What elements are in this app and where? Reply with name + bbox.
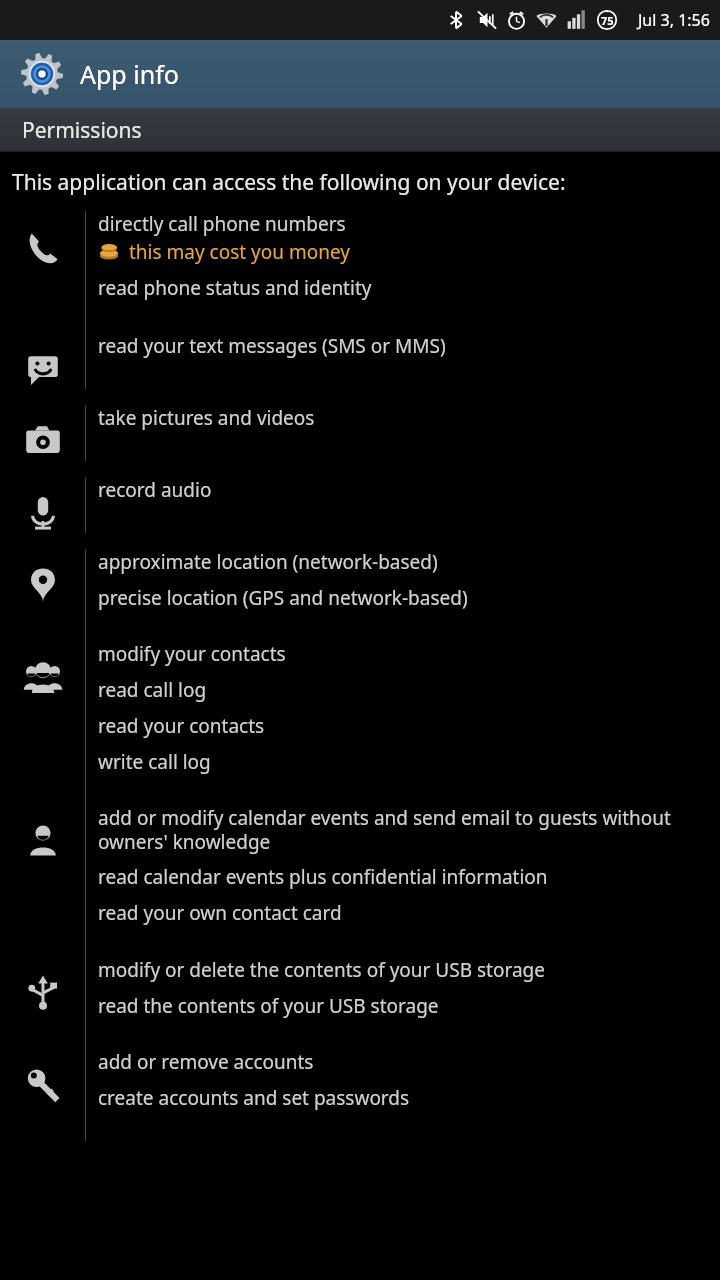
staticText: read phone status and identity — [98, 275, 372, 301]
staticText: read your own contact card — [98, 900, 342, 926]
staticText: read call log — [98, 677, 207, 703]
button[interactable]: Microphone permissions — [0, 477, 720, 549]
other: Calendar permissions — [23, 821, 63, 861]
other: Location permissions — [23, 565, 63, 605]
button[interactable]: Accounts permissions — [0, 1049, 720, 1141]
staticText: write call log — [98, 749, 211, 775]
staticText: Permissions — [22, 116, 142, 145]
other: SMS permissions — [23, 349, 63, 389]
staticText: modify your contacts — [98, 641, 286, 667]
staticText: This application can access the followin… — [12, 168, 566, 197]
other: Microphone permissions — [23, 493, 63, 533]
button[interactable]: Contacts permissions — [0, 641, 720, 805]
button[interactable]: SMS permissions — [0, 333, 720, 405]
staticText: this may cost you money — [129, 239, 351, 265]
staticText: Jul 3, 1:56 — [638, 9, 710, 31]
staticText: precise location (GPS and network-based) — [98, 585, 468, 611]
staticText: approximate location (network-based) — [98, 549, 438, 575]
button[interactable]: Permissions — [0, 108, 720, 152]
staticText: read your text messages (SMS or MMS) — [98, 333, 446, 359]
other: Contacts permissions — [23, 657, 63, 697]
other: Camera permissions — [23, 421, 63, 461]
staticText: 75 — [601, 13, 614, 28]
button[interactable]: Location permissions — [0, 549, 720, 641]
button[interactable]: Phone permissions — [0, 211, 720, 333]
staticText: take pictures and videos — [98, 405, 315, 431]
staticText: read your contacts — [98, 713, 265, 739]
staticText: read calendar events plus confidential i… — [98, 864, 548, 890]
other: Storage permissions — [23, 973, 63, 1013]
staticText: modify or delete the contents of your US… — [98, 957, 545, 983]
staticText: App info — [80, 57, 179, 91]
button[interactable]: Storage permissions — [0, 957, 720, 1049]
staticText: add or remove accounts — [98, 1049, 314, 1075]
staticText: read the contents of your USB storage — [98, 993, 439, 1019]
button[interactable]: Camera permissions — [0, 405, 720, 477]
staticText: directly call phone numbers — [98, 211, 346, 237]
staticText: record audio — [98, 477, 212, 503]
button[interactable]: Calendar permissions — [0, 805, 720, 957]
staticText: add or modify calendar events and send e… — [98, 805, 716, 854]
other: Phone permissions — [23, 227, 63, 267]
button[interactable]: App info — [0, 40, 720, 108]
other: Accounts permissions — [23, 1065, 63, 1105]
staticText: create accounts and set passwords — [98, 1085, 410, 1111]
